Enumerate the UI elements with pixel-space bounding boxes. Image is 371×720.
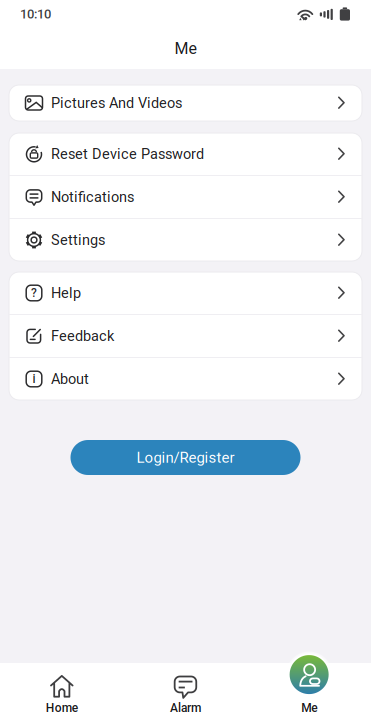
button[interactable]: ? bbox=[9, 272, 362, 314]
staticText: Settings bbox=[51, 231, 105, 248]
staticText: Notifications bbox=[51, 188, 134, 205]
staticText: Alarm bbox=[170, 701, 201, 715]
button[interactable]: Reset Device Password bbox=[9, 133, 362, 175]
staticText: ? bbox=[31, 286, 37, 300]
staticText: i bbox=[32, 372, 35, 386]
button[interactable]: Login/Register bbox=[70, 440, 300, 475]
button[interactable]: Settings bbox=[9, 219, 362, 261]
staticText: Feedback bbox=[51, 327, 114, 344]
staticText: Help bbox=[51, 284, 81, 301]
button[interactable]: Alarm bbox=[124, 663, 247, 720]
button[interactable]: Me bbox=[247, 663, 371, 720]
button[interactable]: Home bbox=[0, 663, 124, 720]
staticText: Me bbox=[301, 701, 317, 715]
button[interactable]: Feedback bbox=[9, 315, 362, 357]
staticText: 10:10 bbox=[20, 6, 51, 22]
staticText: Login/Register bbox=[136, 449, 234, 466]
button[interactable]: Notifications bbox=[9, 176, 362, 218]
staticText: Pictures And Videos bbox=[51, 94, 182, 111]
staticText: Me bbox=[174, 39, 196, 58]
staticText: Home bbox=[46, 701, 78, 715]
staticText: Reset Device Password bbox=[51, 145, 204, 162]
button[interactable]: Pictures And Videos bbox=[9, 85, 362, 121]
staticText: About bbox=[51, 370, 89, 387]
button[interactable]: i bbox=[9, 358, 362, 400]
